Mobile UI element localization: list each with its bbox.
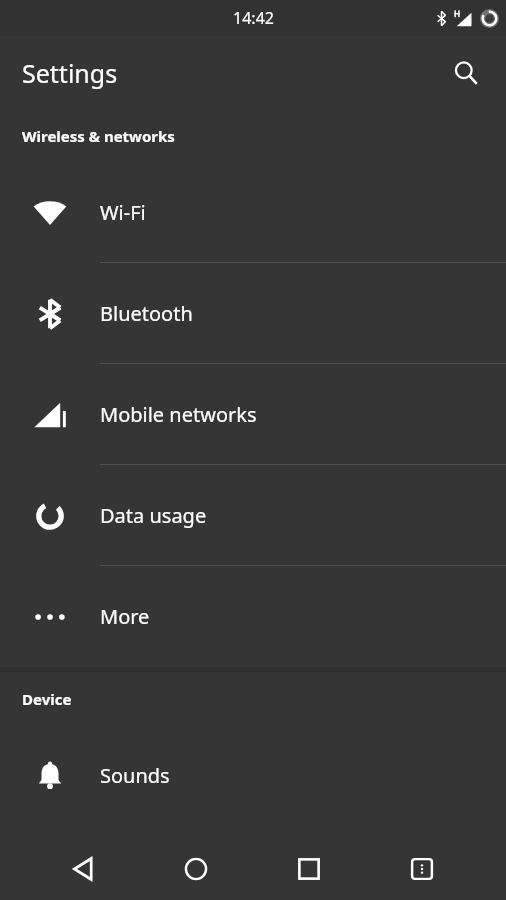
button[interactable]: Menu (365, 838, 478, 900)
button[interactable]: Sounds (0, 725, 506, 826)
button[interactable]: More (0, 566, 506, 667)
staticText: Sounds (100, 762, 170, 789)
staticText: Settings (22, 56, 118, 90)
staticText: More (100, 603, 150, 630)
button[interactable]: Data usage (0, 465, 506, 566)
button[interactable]: Recent apps (252, 838, 365, 900)
button[interactable]: Search (442, 49, 490, 97)
staticText: Wireless & networks (22, 126, 175, 146)
staticText: 14:42 (233, 7, 274, 29)
button[interactable]: Bluetooth (0, 263, 506, 364)
button[interactable]: Mobile networks (0, 364, 506, 465)
button[interactable]: Home (140, 838, 252, 900)
staticText: Data usage (100, 502, 207, 529)
staticText: Bluetooth (100, 300, 193, 327)
staticText: Wi-Fi (100, 199, 146, 226)
button[interactable]: Wi-Fi (0, 162, 506, 263)
button[interactable]: Back (28, 838, 140, 900)
staticText: Mobile networks (100, 401, 257, 428)
staticText: Device (22, 689, 72, 709)
